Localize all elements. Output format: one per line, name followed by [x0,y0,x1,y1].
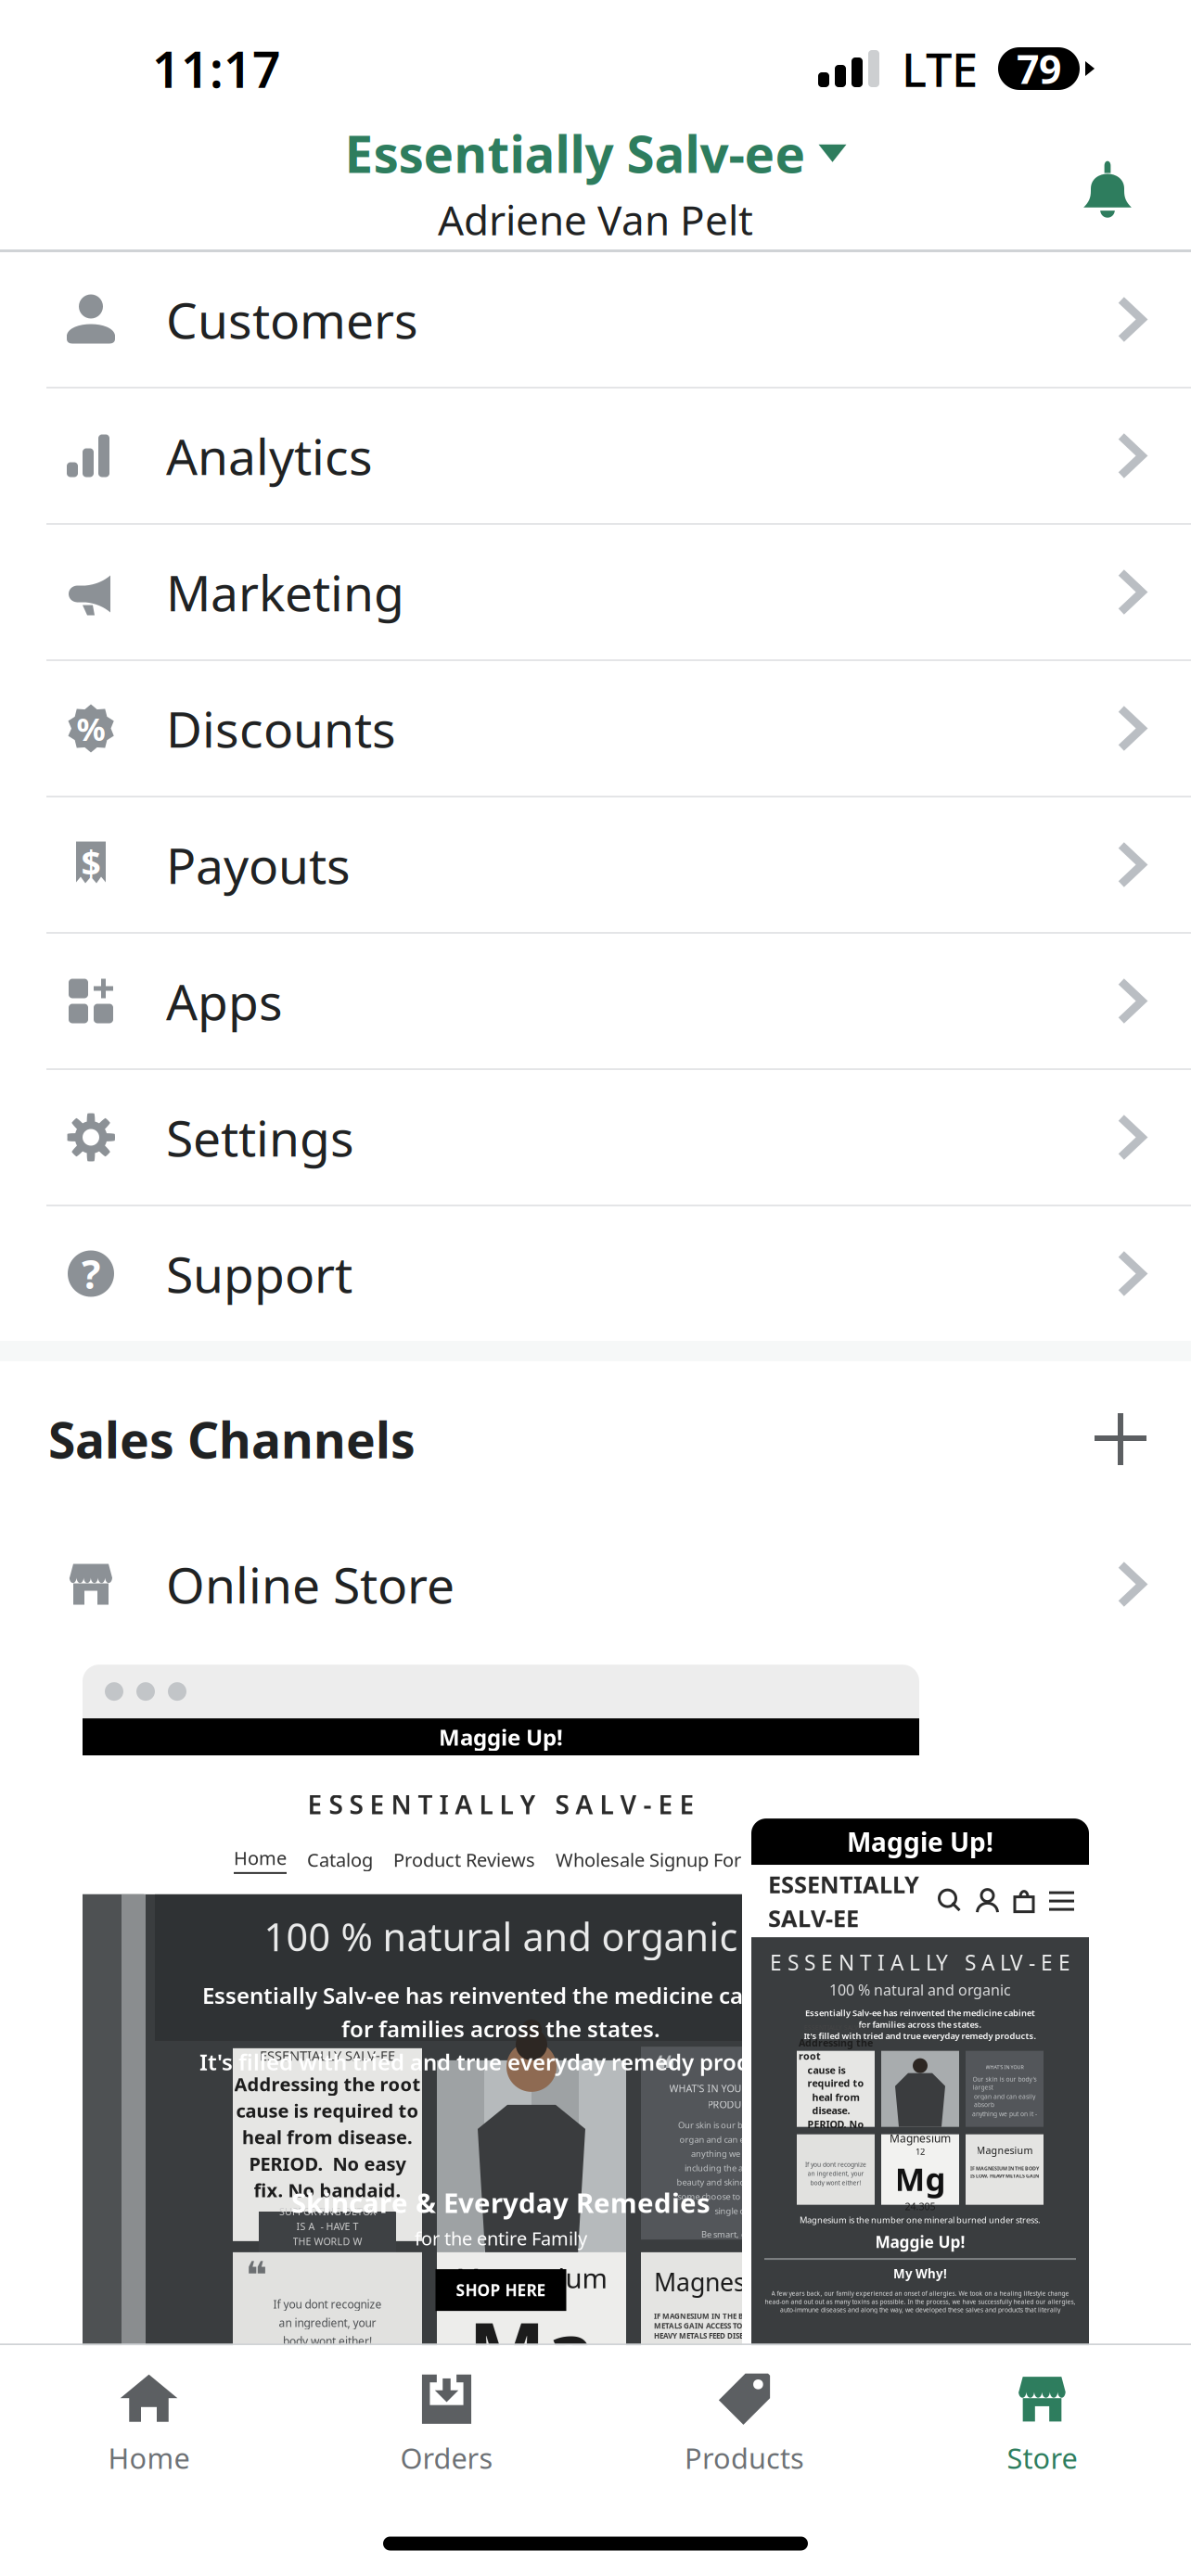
staticText: Customers [166,287,418,352]
button[interactable]: Store [893,2345,1191,2511]
staticText: Orders [400,2439,493,2477]
staticText: $ [81,840,101,886]
button[interactable]: Notifications [1074,155,1141,222]
staticText: 100 % natural and organic [829,1980,1011,2000]
staticText: organ and can easily absorb [679,2134,792,2145]
staticText: 11:17 [152,36,281,101]
button[interactable]: Apps [0,934,1191,1068]
button[interactable]: $ [0,797,1191,932]
staticText: Products [685,2439,804,2477]
staticText: Discounts [166,696,396,761]
button[interactable]: Products [595,2345,893,2511]
staticText: Marketing [166,559,404,625]
button[interactable]: ? [0,1206,1191,1341]
staticText: body wont either! [810,2179,861,2187]
staticText: Home [234,1846,287,1870]
staticText: Adriene Van Pelt [438,193,753,247]
staticText: Magnesium [654,2265,790,2298]
staticText: ❝ [654,2048,675,2091]
staticText: IN TODAY! [303,2250,352,2263]
button[interactable]: Marketing [0,525,1191,659]
staticText: Wholesale Signup Forms [556,1847,768,1872]
staticText: Support [166,1241,352,1306]
staticText: If you dont recognize [273,2297,382,2312]
staticText: Addressing the root [799,2036,873,2062]
staticText: WHAT'S IN YOUR SKIN CARE [669,2082,802,2095]
button[interactable]: Analytics [0,389,1191,523]
staticText: including the average 12+ [685,2162,787,2174]
staticText: Apps [166,968,283,1034]
staticText: organ and can easily absorb [974,2092,1035,2109]
staticText: PRODUCTS? [707,2098,764,2111]
staticText: HEAVY METALS FEED DISEASE. [654,2331,758,2341]
staticText: Maggie Up! [847,1824,993,1859]
staticText: 12 [916,2146,925,2157]
button[interactable]: Customers [0,252,1191,387]
staticText: Skincare & Everyday Remedies [291,2184,711,2220]
staticText: cause is required to [807,2063,864,2090]
staticText: Store [1007,2439,1077,2477]
staticText: Essentially Salv-ee has reinvented the m… [805,2007,1035,2019]
staticText: If you dont recognize [805,2160,866,2169]
staticText: Online Store [166,1551,455,1617]
staticText: anything we put on it - [691,2148,780,2159]
staticText: PERIOD. No easy [249,2151,406,2176]
staticText: METALS GAIN ACCESS TO OUR CELLS & ORGANS… [654,2321,824,2331]
staticText: Be smart, choose [701,2228,770,2240]
staticText: heal from disease. [812,2091,859,2117]
staticText: Essentially Salv-ee [345,120,806,187]
staticText: Mg [895,2157,946,2200]
staticText: anything we put on it - [972,2110,1037,2118]
staticText: E S S E N T I A L L Y S A L V - E E [307,1787,694,1821]
button[interactable]: % [0,661,1191,796]
staticText: Settings [166,1104,354,1170]
button[interactable]: Online Store [0,1517,1191,1651]
staticText: WHAT'S IN YOUR [986,2064,1024,2070]
staticText: Addressing the root [234,2072,421,2096]
staticText: an ingredient, your [279,2315,376,2330]
staticText: ESSENTIALLY [768,1868,919,1900]
staticText: some choose to put on every [678,2191,794,2202]
staticText: My Why! [893,2265,947,2282]
staticText: head-on and out out as many toxins as po… [765,2297,1076,2306]
staticText: Magnesium [890,2131,951,2146]
staticText: 24.305 [905,2200,935,2213]
staticText: Magnesium [976,2144,1033,2157]
staticText: single day. [715,2205,756,2216]
staticText: SALV-EE [768,1902,859,1934]
staticText: It's filled with tried and true everyday… [199,2047,802,2077]
button[interactable]: Orders [298,2345,595,2511]
staticText: beauty and skincare products [677,2176,794,2188]
staticText: for families across the states. [341,2014,660,2043]
staticText: ESSENTIALLY SALV-EE [804,2023,867,2032]
staticText: body wont either! [283,2334,372,2348]
staticText: Magnesium [456,2260,607,2296]
staticText: cause is required to [236,2098,419,2123]
staticText: IS A - HAVE T [296,2220,359,2233]
staticText: PERIOD. No easy [807,2118,864,2144]
button[interactable]: Settings [0,1070,1191,1205]
staticText: IF MAGNESIUM IN THE BODY IS LOW, HEAVY [654,2311,812,2321]
staticText: A few years back, our family experienced… [771,2289,1069,2298]
button[interactable]: Home [0,2345,298,2511]
staticText: Product Reviews [393,1847,535,1872]
staticText: LTE [902,37,978,100]
staticText: ? [82,1247,100,1300]
staticText: Maggie Up! [875,2231,965,2252]
staticText: % [77,707,105,750]
staticText: IF MAGNESIUM IN THE BODY [970,2165,1039,2172]
staticText: It's filled with tried and true everyday… [804,2030,1037,2042]
staticText: ❝ [246,2254,267,2296]
staticText: 100 % natural and organic [264,1911,738,1962]
button[interactable]: Add sales channel [1095,1413,1146,1465]
staticText: Payouts [166,832,351,898]
staticText: Our skin is our body's largest [678,2119,793,2131]
staticText: ESSENTIALLY SALV-EE [260,2046,395,2064]
staticText: Magnesium is the number one mineral burn… [800,2214,1041,2226]
staticText: fix. No bandaid. [254,2178,401,2202]
staticText: E S S E N T I A L LY S A LV - E E [770,1948,1070,1976]
staticText: 79 [1017,42,1061,95]
staticText: Home [108,2439,190,2477]
staticText: IS LOW, HEAVY METALS GAIN [970,2173,1039,2179]
